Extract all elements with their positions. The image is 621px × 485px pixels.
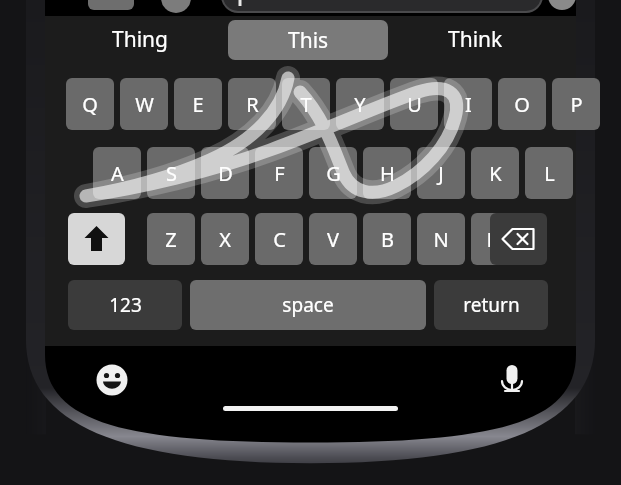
staticText: space [282,292,334,318]
staticText: X [219,226,231,253]
button[interactable]: J [417,147,465,199]
button[interactable]: U [390,78,438,130]
staticText: I [465,91,472,118]
staticText: G [326,160,341,187]
button[interactable]: return [434,280,548,330]
button[interactable]: I [444,78,492,130]
staticText: L [544,160,555,187]
button[interactable]: O [498,78,546,130]
button[interactable]: T [282,78,330,130]
button[interactable]: Thing [75,20,205,58]
staticText: Think [448,25,503,54]
staticText: Z [165,226,177,253]
button[interactable]: Emoji [88,356,136,404]
button[interactable]: B [363,213,411,265]
staticText: H [380,160,395,187]
button[interactable]: This [228,20,388,60]
staticText: M [486,226,505,253]
staticText: This [288,26,329,55]
staticText: B [381,226,394,253]
button[interactable]: R [228,78,276,130]
button[interactable]: G [309,147,357,199]
button[interactable]: F [255,147,303,199]
button[interactable]: Q [66,78,114,130]
staticText: N [433,226,449,253]
staticText: O [514,91,530,118]
button[interactable]: P [552,78,600,130]
button[interactable]: Z [147,213,195,265]
staticText: C [273,226,286,253]
button[interactable]: 123 [68,280,182,330]
button[interactable]: A [93,147,141,199]
staticText: W [135,91,154,118]
button[interactable]: Backspace [490,213,547,265]
button[interactable]: L [525,147,573,199]
button[interactable]: V [309,213,357,265]
staticText: D [218,160,233,187]
staticText: R [246,91,259,118]
button[interactable]: Dictation [488,356,536,404]
staticText: T [300,91,312,118]
staticText: J [438,160,444,187]
button[interactable]: K [471,147,519,199]
button[interactable]: S [147,147,195,199]
button[interactable]: W [120,78,168,130]
staticText: U [407,91,422,118]
staticText: K [489,160,502,187]
staticText: S [166,160,177,187]
button[interactable]: space [190,280,426,330]
button[interactable]: E [174,78,222,130]
button[interactable]: N [417,213,465,265]
staticText: F [274,160,285,187]
staticText: A [111,160,124,187]
staticText: Y [354,91,366,118]
staticText: Thing [112,25,168,54]
staticText: V [327,226,339,253]
button[interactable]: Shift [68,213,125,265]
button[interactable]: D [201,147,249,199]
button[interactable]: C [255,213,303,265]
button[interactable]: Think [410,20,540,58]
staticText: Q [82,91,98,118]
staticText: return [463,292,520,318]
button[interactable]: H [363,147,411,199]
staticText: P [570,91,583,118]
button[interactable]: X [201,213,249,265]
staticText: E [192,91,204,118]
button[interactable]: M [471,213,519,265]
button[interactable]: Y [336,78,384,130]
staticText: 123 [109,292,142,318]
